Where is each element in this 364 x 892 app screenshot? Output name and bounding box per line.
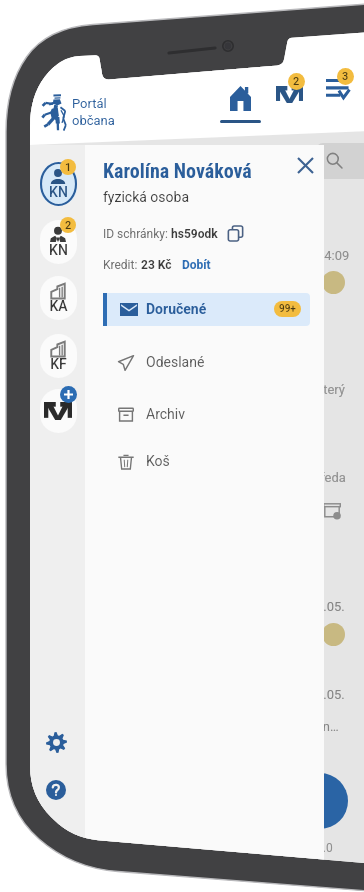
button[interactable]: Odeslané <box>103 346 310 379</box>
staticText: Doručené <box>146 301 207 317</box>
button[interactable]: KF <box>35 331 81 381</box>
button[interactable]: KN <box>35 217 81 267</box>
button[interactable]: Přidat schránku <box>35 386 81 436</box>
staticText: KN <box>44 184 73 200</box>
button[interactable]: Domů <box>211 74 269 138</box>
button[interactable]: Nová zpráva <box>292 773 348 829</box>
staticText: 9.05. <box>316 599 345 614</box>
staticText: 99+ <box>279 303 296 315</box>
staticText: 1 <box>65 161 72 174</box>
button[interactable]: Úkoly <box>314 66 364 126</box>
button[interactable]: Doručené <box>103 293 310 326</box>
staticText: 3 <box>342 70 349 83</box>
staticText: fyzická osoba <box>103 189 190 205</box>
staticText: Karolína Nováková <box>103 159 252 182</box>
button[interactable]: Zprávy <box>262 68 318 128</box>
staticText: Kredit: <box>103 258 141 272</box>
staticText: 23 Kč <box>141 258 172 272</box>
button[interactable]: KA <box>35 273 81 323</box>
button[interactable]: Kopírovat <box>227 225 244 242</box>
staticText: sn… <box>316 719 339 734</box>
staticText: ID schránky: <box>103 227 171 241</box>
button[interactable]: Koš <box>103 445 310 478</box>
staticText: tředa <box>316 470 346 485</box>
staticText: 8.0 <box>316 841 333 855</box>
button[interactable]: Nápověda <box>46 780 66 800</box>
staticText: 2 <box>293 75 300 88</box>
button[interactable]: Archiv <box>103 398 310 431</box>
staticText: Archiv <box>146 406 185 422</box>
button[interactable]: Zavřít <box>289 149 321 181</box>
staticText: KN <box>44 242 73 258</box>
staticText: občana <box>72 113 115 128</box>
button[interactable]: Hledat <box>316 143 364 179</box>
staticText: Koš <box>146 453 170 469</box>
staticText: KF <box>44 356 73 372</box>
button[interactable]: KN <box>35 159 81 209</box>
staticText: 14:09 <box>317 248 350 263</box>
button[interactable]: Nastavení <box>46 732 67 753</box>
staticText: Dobít <box>182 258 211 272</box>
staticText: 1.05. <box>316 687 345 702</box>
staticText: 2 <box>65 219 72 232</box>
button[interactable]: Dobít <box>182 258 211 272</box>
staticText: Portál <box>72 96 107 111</box>
staticText: úterý <box>316 382 345 397</box>
staticText: Odeslané <box>146 354 205 370</box>
staticText: hs59odk <box>171 227 218 241</box>
staticText: KA <box>44 298 73 314</box>
